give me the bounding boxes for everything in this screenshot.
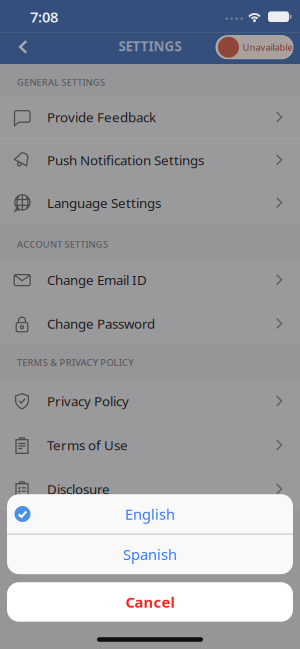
staticText: GENERAL SETTINGS (17, 76, 105, 88)
staticText: Unavailable (242, 41, 292, 53)
staticText: Privacy Policy (47, 392, 129, 410)
staticText: Change Email ID (47, 271, 147, 289)
staticText: Terms of Use (47, 436, 128, 454)
staticText: English (125, 504, 175, 524)
staticText: Change Password (47, 315, 155, 332)
staticText: Spanish (123, 545, 177, 564)
button[interactable]: Change Password (0, 302, 300, 345)
button[interactable]: Push Notification Settings (0, 139, 300, 181)
button[interactable]: English (7, 494, 293, 534)
button[interactable]: Privacy Policy (0, 379, 300, 423)
button[interactable]: Unavailable (216, 37, 300, 60)
button[interactable]: Change Email ID (0, 258, 300, 301)
staticText: Disclosure (47, 480, 110, 498)
button[interactable]: Language Settings (0, 182, 300, 224)
staticText: TERMS & PRIVACY POLICY (17, 356, 133, 368)
staticText: SETTINGS (118, 37, 181, 55)
staticText: Provide Feedback (47, 108, 156, 126)
button[interactable]: Spanish (7, 535, 293, 574)
staticText: 7:08 (30, 7, 58, 26)
button[interactable]: Back (0, 41, 28, 55)
button[interactable]: Provide Feedback (0, 96, 300, 138)
button[interactable]: Cancel (7, 582, 293, 622)
staticText: Push Notification Settings (47, 151, 204, 169)
staticText: ACCOUNT SETTINGS (17, 238, 108, 250)
staticText: Cancel (125, 592, 174, 612)
staticText: Language Settings (47, 194, 161, 212)
button[interactable]: Disclosure (0, 467, 300, 511)
button[interactable]: Terms of Use (0, 423, 300, 467)
